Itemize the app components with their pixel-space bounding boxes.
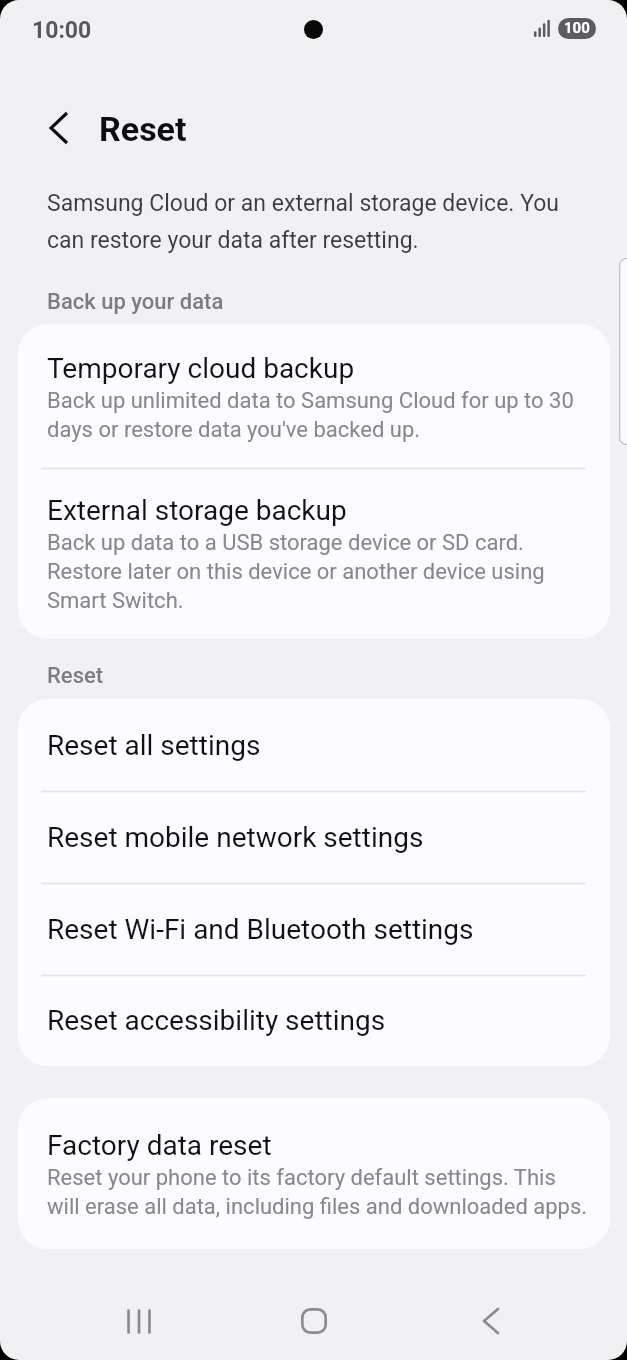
button[interactable]: Reset accessibility settings [18,975,610,1066]
button[interactable]: Reset all settings [18,699,610,791]
staticText: Factory data reset [47,1129,272,1162]
staticText: External storage backup [47,494,347,527]
button[interactable]: Recent apps [69,1282,209,1360]
staticText: Reset accessibility settings [47,1004,386,1037]
button[interactable]: Temporary cloud backup [18,324,610,468]
button[interactable]: Home [244,1282,384,1360]
staticText: Samsung Cloud or an external storage dev… [47,182,582,256]
button[interactable]: Back [419,1282,559,1360]
button[interactable]: Reset mobile network settings [18,791,610,883]
button[interactable]: Navigate up [31,100,87,156]
staticText: 10:00 [32,17,92,44]
staticText: Reset Wi-Fi and Bluetooth settings [47,913,474,946]
button[interactable]: Reset Wi-Fi and Bluetooth settings [18,883,610,975]
button[interactable]: External storage backup [18,469,610,639]
staticText: Temporary cloud backup [47,352,355,385]
staticText: Back up data to a USB storage device or … [47,527,578,614]
staticText: 100 [564,20,590,37]
staticText: Reset [99,110,187,149]
staticText: Reset all settings [47,729,261,762]
staticText: Back up your data [47,289,224,315]
staticText: Reset mobile network settings [47,821,424,854]
staticText: Reset [47,663,104,689]
button[interactable]: Factory data reset [18,1098,610,1249]
staticText: Reset your phone to its factory default … [47,1162,590,1220]
staticText: Back up unlimited data to Samsung Cloud … [47,385,574,443]
